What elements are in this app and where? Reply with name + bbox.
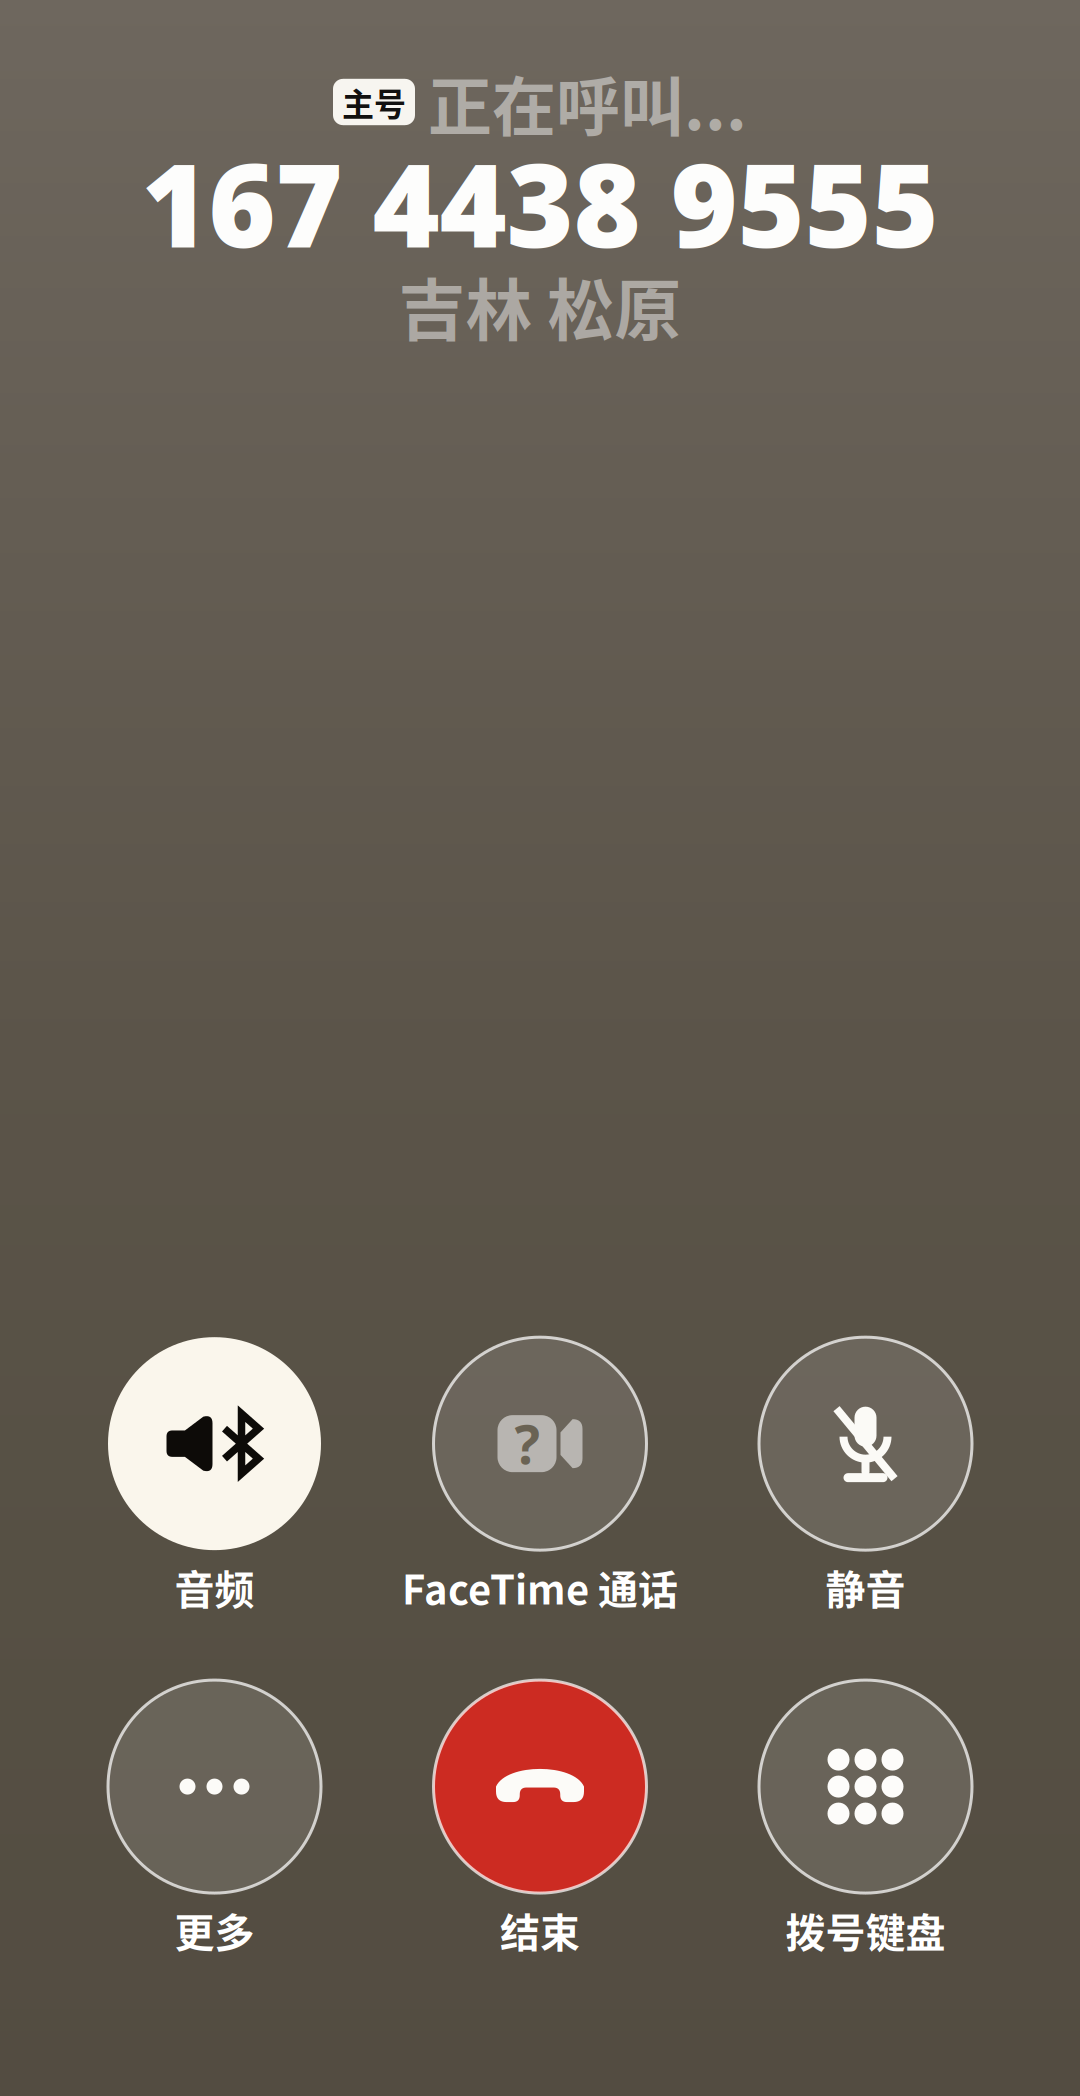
button[interactable]: 静音 [759,1337,972,1616]
staticText: 167 4438 9555 [141,127,938,279]
staticText: 更多 [174,1901,254,1959]
staticText: 吉林 松原 [398,258,681,354]
staticText: ? [514,1408,539,1479]
button[interactable]: ? [402,1337,678,1616]
staticText: FaceTime 通话 [402,1558,678,1616]
staticText: 主号 [342,79,406,125]
staticText: 结束 [500,1901,580,1959]
button[interactable]: 结束 [433,1680,646,1959]
staticText: 拨号键盘 [785,1901,945,1959]
staticText: 静音 [825,1558,905,1616]
staticText: 正在呼叫... [428,56,747,148]
button[interactable]: 拨号键盘 [759,1680,972,1959]
button[interactable]: 音频 [108,1337,321,1616]
button[interactable]: 更多 [108,1680,321,1959]
staticText: 音频 [174,1558,254,1616]
